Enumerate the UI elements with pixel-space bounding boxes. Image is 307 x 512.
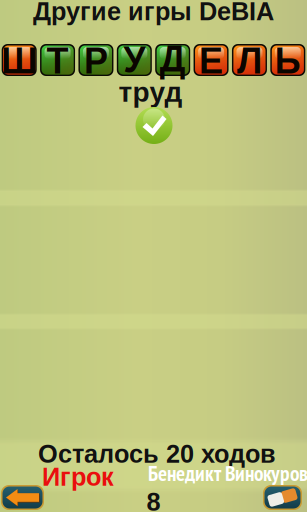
button[interactable]: Back (1, 485, 44, 510)
staticText: 8 (146, 488, 160, 512)
staticText: Т (47, 41, 69, 81)
staticText: Другие игры DeBIA (33, 0, 274, 26)
staticText: Осталось 20 ходов (38, 440, 276, 468)
staticText: Бенедикт Винокуров (148, 459, 307, 487)
staticText: Р (84, 41, 108, 81)
button[interactable]: Erase (263, 485, 302, 510)
staticText: Е (199, 41, 223, 81)
staticText: Л (237, 41, 262, 81)
staticText: Игрок (42, 463, 114, 491)
staticText: труд (118, 76, 182, 108)
staticText: Ь (275, 41, 301, 81)
staticText: Ш (1, 41, 37, 81)
staticText: У (123, 40, 145, 80)
staticText: Д (160, 39, 186, 79)
